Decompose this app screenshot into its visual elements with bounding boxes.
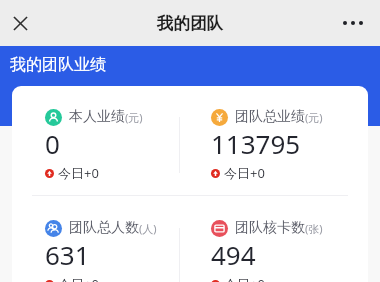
staticText: 113795 xyxy=(211,126,301,161)
staticText: 今日+0 xyxy=(224,164,265,182)
staticText: 494 xyxy=(211,237,256,272)
staticText: (元) xyxy=(125,110,143,125)
staticText: 0 xyxy=(45,126,60,161)
button[interactable]: Close xyxy=(2,5,38,41)
staticText: 我的团队业绩 xyxy=(10,55,106,75)
staticText: (人) xyxy=(139,221,157,236)
staticText: (张) xyxy=(305,221,323,236)
staticText: 团队总人数 xyxy=(69,219,139,237)
staticText: (元) xyxy=(305,110,323,125)
staticText: 本人业绩 xyxy=(69,108,125,126)
staticText: 今日+0 xyxy=(58,275,99,282)
staticText: 团队核卡数 xyxy=(235,219,305,237)
staticText: 我的团队 xyxy=(157,13,223,34)
staticText: 团队总业绩 xyxy=(235,108,305,126)
button[interactable]: More options xyxy=(335,5,371,41)
staticText: 631 xyxy=(45,237,90,272)
staticText: 今日+0 xyxy=(58,164,99,182)
staticText: 今日+0 xyxy=(224,275,265,282)
